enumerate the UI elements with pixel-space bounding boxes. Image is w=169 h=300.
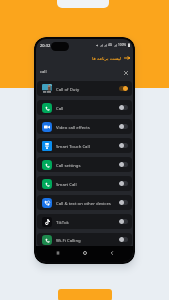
staticText: Smart Touch Call bbox=[56, 143, 90, 149]
staticText: Smart Call bbox=[56, 181, 77, 187]
staticText: لیست برنامه ها bbox=[92, 55, 122, 61]
button[interactable]: Toggle bbox=[119, 124, 128, 129]
staticText: Call settings bbox=[56, 162, 81, 168]
staticText: Call & text on other devices bbox=[56, 200, 111, 206]
staticText: Call bbox=[56, 105, 64, 111]
button[interactable]: Call of Duty bbox=[37, 81, 132, 96]
staticText: call bbox=[40, 69, 47, 75]
button[interactable]: Recents bbox=[53, 248, 62, 257]
button[interactable]: Toggle bbox=[119, 181, 128, 186]
button[interactable]: TikTok bbox=[37, 214, 132, 229]
staticText: Call of Duty bbox=[56, 86, 80, 92]
button[interactable]: Back bbox=[107, 248, 116, 257]
button[interactable]: Toggle bbox=[119, 219, 128, 224]
button[interactable]: Toggle bbox=[119, 162, 128, 167]
button[interactable]: Toggle bbox=[119, 86, 128, 91]
staticText: 4G bbox=[108, 43, 113, 47]
staticText: 100% bbox=[118, 43, 127, 47]
staticText: 20:32 bbox=[40, 43, 51, 48]
staticText: TikTok bbox=[56, 219, 69, 225]
button[interactable]: Home bbox=[80, 248, 89, 257]
button[interactable]: Toggle bbox=[119, 200, 128, 205]
staticText: Video call effects bbox=[56, 124, 90, 130]
button[interactable]: Video call effects bbox=[37, 119, 132, 134]
button[interactable]: Toggle bbox=[119, 237, 128, 242]
button[interactable] bbox=[58, 289, 112, 300]
button[interactable]: Toggle bbox=[119, 143, 128, 148]
button[interactable]: Call settings bbox=[37, 157, 132, 172]
button[interactable]: Wi-Fi Calling bbox=[37, 233, 132, 246]
button[interactable]: لیست برنامه ها bbox=[92, 55, 130, 61]
button[interactable]: Smart Call bbox=[37, 176, 132, 191]
button[interactable]: Call bbox=[37, 100, 132, 115]
staticText: Wi-Fi Calling bbox=[56, 237, 81, 243]
button[interactable]: Smart Touch Call bbox=[37, 138, 132, 153]
button[interactable]: Call & text on other devices bbox=[37, 195, 132, 210]
button[interactable]: Toggle bbox=[119, 105, 128, 110]
button[interactable]: Clear bbox=[122, 69, 129, 76]
